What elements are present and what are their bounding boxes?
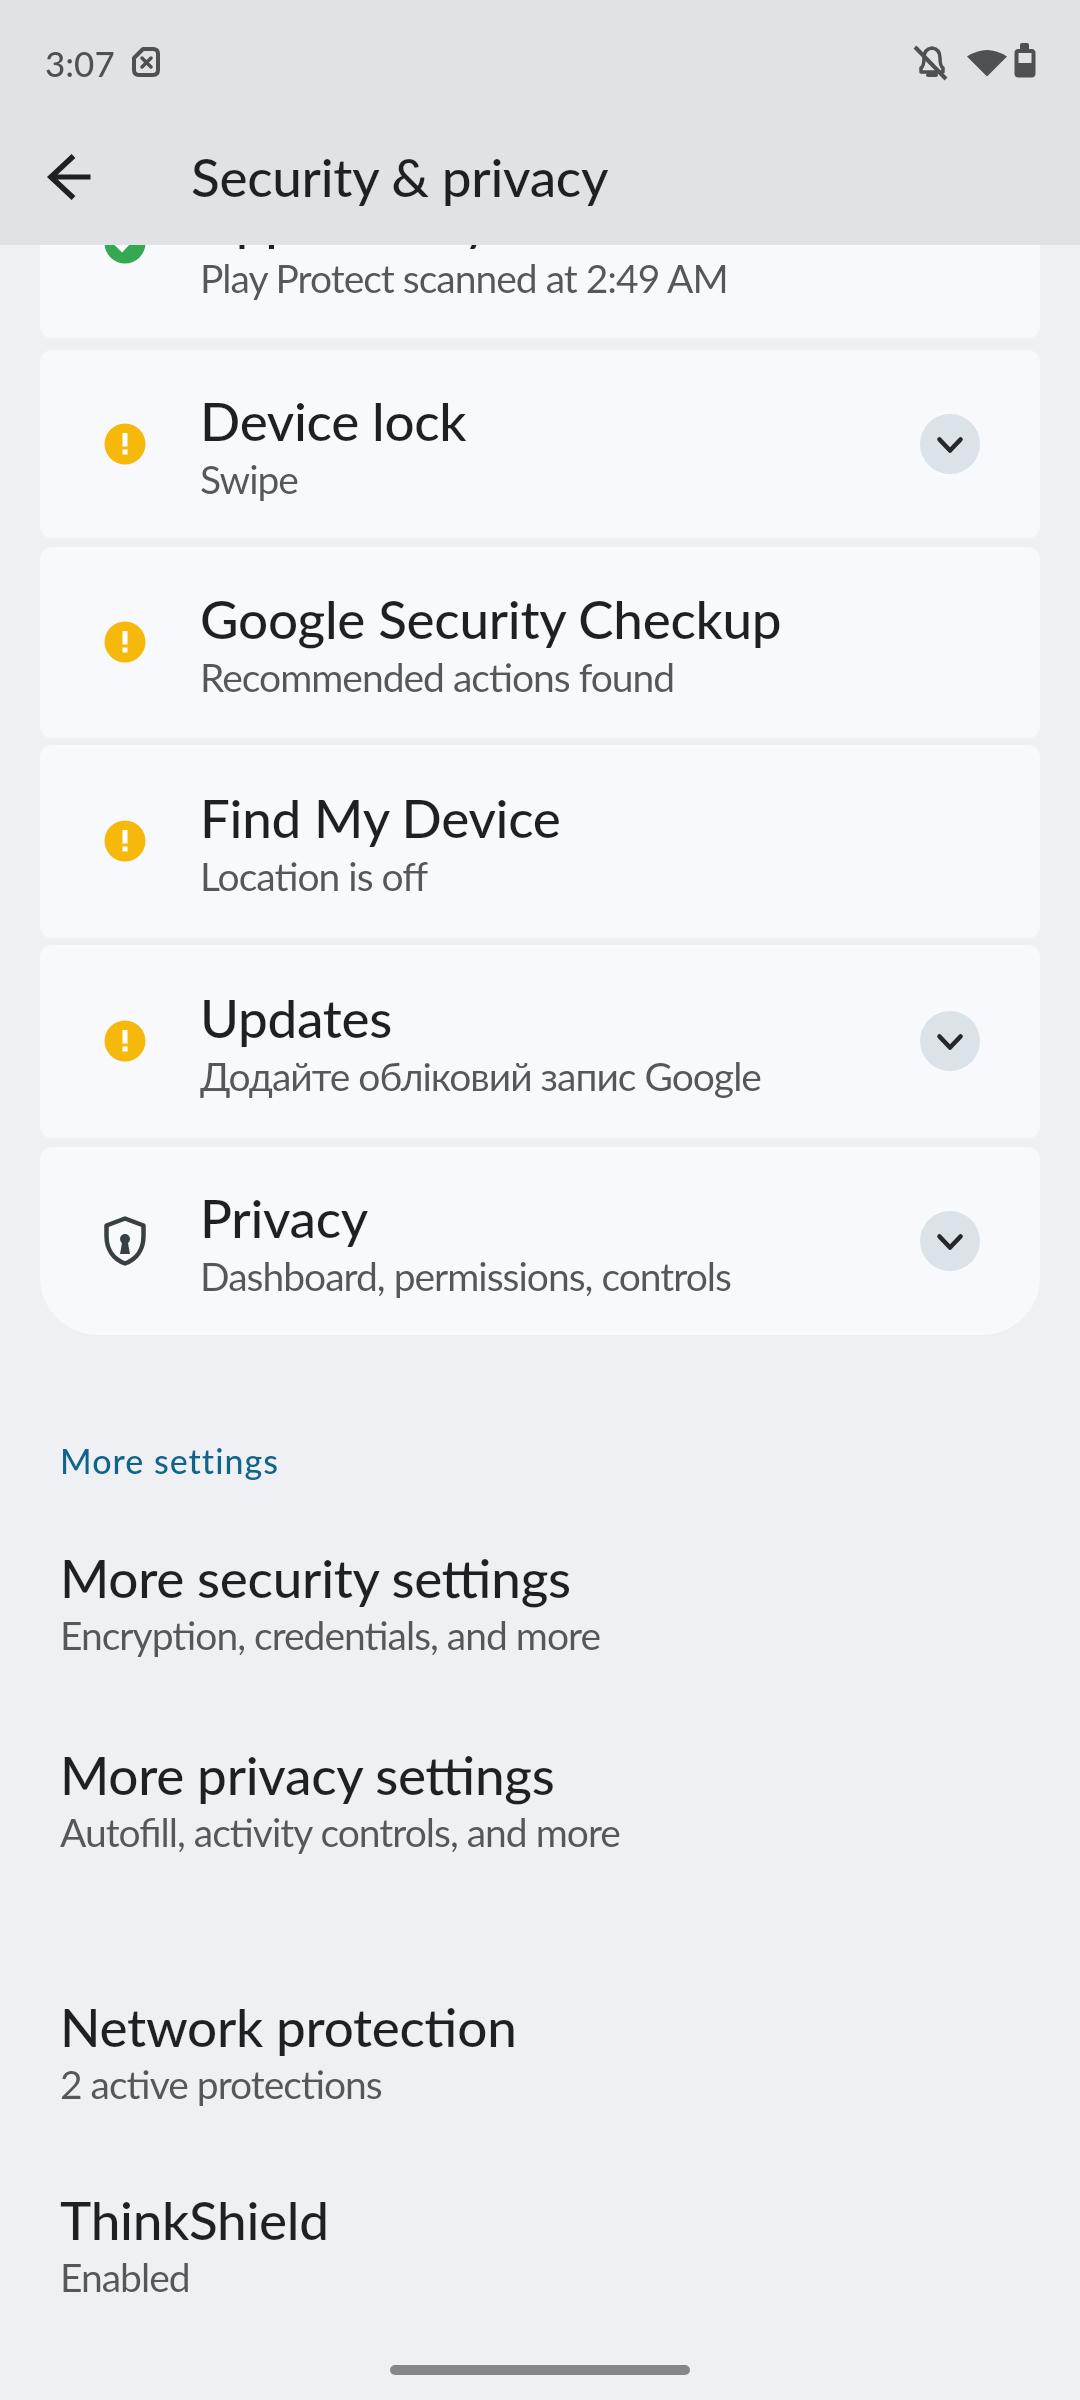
staticText: Privacy — [200, 1186, 369, 1250]
staticText: Swipe — [200, 456, 298, 503]
button[interactable]: App security — [40, 148, 1040, 338]
button[interactable]: Network protection — [0, 1985, 1080, 2121]
staticText: Find My Device — [200, 786, 561, 850]
staticText: Location is off — [200, 853, 428, 900]
button[interactable] — [919, 1210, 981, 1272]
button[interactable]: Privacy — [40, 1147, 1040, 1335]
staticText: ThinkShield — [60, 2188, 329, 2252]
staticText: More settings — [60, 1440, 280, 1481]
button[interactable] — [919, 1010, 981, 1072]
button[interactable]: Google Security Checkup — [40, 547, 1040, 738]
staticText: More privacy settings — [60, 1743, 555, 1807]
staticText: App security — [200, 188, 491, 252]
staticText: Network protection — [60, 1995, 517, 2059]
staticText: 3:07 — [45, 42, 115, 84]
button[interactable] — [919, 413, 981, 475]
button[interactable]: Find My Device — [40, 745, 1040, 938]
staticText: Play Protect scanned at 2:49 AM — [200, 255, 728, 302]
staticText: Recommended actions found — [200, 654, 675, 701]
staticText: Security & privacy — [191, 145, 609, 209]
button[interactable]: More security settings — [0, 1536, 1080, 1672]
button[interactable]: More settings — [40, 1408, 340, 1508]
staticText: Додайте обліковий запис Google — [200, 1053, 761, 1100]
button[interactable]: ThinkShield — [0, 2178, 1080, 2314]
button[interactable] — [40, 146, 102, 208]
button[interactable]: Updates — [40, 945, 1040, 1138]
staticText: Updates — [200, 986, 393, 1050]
staticText: Dashboard, permissions, controls — [200, 1253, 731, 1300]
button[interactable]: More privacy settings — [0, 1733, 1080, 1869]
staticText: Encryption, credentials, and more — [60, 1612, 601, 1659]
staticText: Google Security Checkup — [200, 587, 782, 651]
staticText: 2 active protections — [60, 2061, 382, 2108]
staticText: More security settings — [60, 1546, 571, 1610]
staticText: Autofill, activity controls, and more — [60, 1809, 620, 1856]
button[interactable]: Device lock — [40, 350, 1040, 538]
staticText: Enabled — [60, 2254, 190, 2301]
staticText: Device lock — [200, 389, 467, 453]
